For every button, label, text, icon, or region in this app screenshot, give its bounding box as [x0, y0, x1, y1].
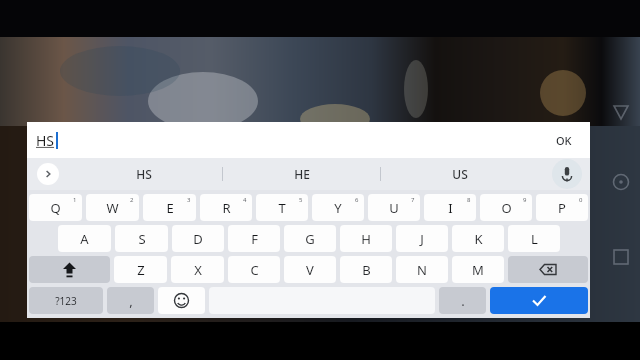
staticText: L	[531, 230, 538, 248]
button[interactable]: S	[115, 225, 168, 252]
staticText: HS	[36, 131, 55, 150]
button[interactable]: Recent apps	[601, 241, 633, 273]
staticText: Z	[137, 261, 145, 279]
button[interactable]: P	[536, 194, 588, 221]
staticText: P	[558, 199, 566, 217]
button[interactable]: E	[143, 194, 196, 221]
button[interactable]: O	[480, 194, 532, 221]
staticText: 9	[523, 196, 527, 204]
button[interactable]: Y	[312, 194, 364, 221]
button[interactable]: HS	[27, 122, 590, 158]
staticText: Y	[334, 199, 342, 217]
button[interactable]: K	[452, 225, 504, 252]
staticText: G	[305, 230, 315, 248]
button[interactable]: G	[284, 225, 336, 252]
staticText: 3	[187, 196, 191, 204]
button[interactable]: OK	[556, 133, 572, 148]
staticText: X	[194, 261, 202, 279]
button[interactable]: Voice input	[552, 159, 582, 189]
button[interactable]: T	[256, 194, 308, 221]
staticText: A	[80, 230, 89, 248]
button[interactable]: A	[58, 225, 111, 252]
staticText: 4	[243, 196, 247, 204]
staticText: ,	[129, 292, 133, 310]
button[interactable]: R	[200, 194, 252, 221]
staticText: N	[417, 261, 427, 279]
staticText: U	[389, 199, 399, 217]
button[interactable]: Z	[114, 256, 167, 283]
button[interactable]: N	[396, 256, 448, 283]
button[interactable]: X	[171, 256, 224, 283]
button[interactable]: HS	[65, 158, 222, 190]
staticText: 6	[355, 196, 359, 204]
button[interactable]: L	[508, 225, 560, 252]
staticText: V	[306, 261, 314, 279]
staticText: .	[461, 292, 465, 310]
button[interactable]: U	[368, 194, 420, 221]
staticText: D	[193, 230, 203, 248]
staticText: OK	[556, 133, 572, 148]
button[interactable]: I	[424, 194, 476, 221]
button[interactable]: W	[86, 194, 139, 221]
staticText: US	[452, 166, 468, 182]
button[interactable]: M	[452, 256, 504, 283]
button[interactable]: Backspace	[508, 256, 588, 283]
staticText: B	[362, 261, 371, 279]
button[interactable]: HE	[223, 158, 380, 190]
staticText: HS	[136, 166, 152, 182]
button[interactable]: .	[439, 287, 486, 314]
button[interactable]: Emoji	[158, 287, 205, 314]
staticText: C	[250, 261, 259, 279]
staticText: 8	[467, 196, 471, 204]
button[interactable]: D	[172, 225, 224, 252]
staticText: F	[251, 230, 258, 248]
button[interactable]: C	[228, 256, 280, 283]
button[interactable]: ?123	[29, 287, 103, 314]
button[interactable]: Back	[601, 98, 633, 130]
button[interactable]: Shift	[29, 256, 110, 283]
staticText: ?123	[55, 294, 77, 308]
button[interactable]: US	[381, 158, 538, 190]
button[interactable]: B	[340, 256, 392, 283]
button[interactable]: ,	[107, 287, 154, 314]
staticText: O	[501, 199, 512, 217]
staticText: K	[474, 230, 483, 248]
button[interactable]: Home	[601, 166, 633, 198]
staticText: M	[472, 261, 484, 279]
button[interactable]: F	[228, 225, 280, 252]
button[interactable]: J	[396, 225, 448, 252]
staticText: 1	[73, 196, 77, 204]
staticText: I	[448, 199, 453, 217]
staticText: 0	[579, 196, 583, 204]
staticText: H	[361, 230, 371, 248]
staticText: 5	[299, 196, 303, 204]
button[interactable]: More suggestions	[37, 163, 59, 185]
staticText: W	[106, 199, 119, 217]
staticText: E	[166, 199, 174, 217]
staticText: T	[278, 199, 286, 217]
staticText: J	[420, 230, 424, 248]
button[interactable]: V	[284, 256, 336, 283]
staticText: HE	[294, 166, 310, 182]
staticText: Q	[50, 199, 61, 217]
staticText: R	[222, 199, 231, 217]
staticText: 7	[411, 196, 415, 204]
button[interactable]: H	[340, 225, 392, 252]
staticText: 2	[130, 196, 134, 204]
button[interactable]: Q	[29, 194, 82, 221]
button[interactable]: Enter	[490, 287, 588, 314]
staticText: S	[138, 230, 146, 248]
